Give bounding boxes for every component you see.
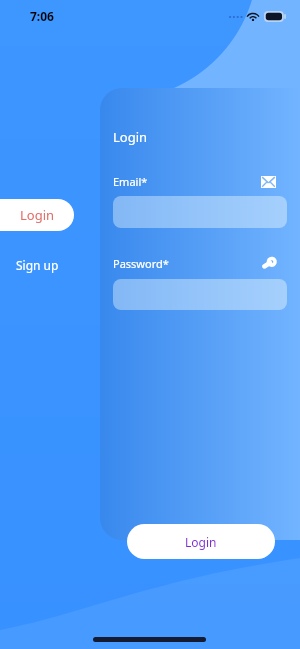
button[interactable]: Login (0, 199, 74, 231)
button[interactable] (113, 196, 287, 228)
other: Email (261, 176, 276, 188)
button[interactable]: Sign up (0, 254, 74, 276)
staticText: Login (185, 534, 217, 550)
staticText: Sign up (16, 257, 59, 273)
button[interactable]: Login (127, 524, 275, 559)
other: Password (261, 256, 277, 271)
staticText: Email* (113, 174, 148, 189)
staticText: 7:06 (30, 8, 54, 24)
staticText: Login (20, 206, 55, 224)
staticText: Login (113, 128, 148, 146)
button[interactable] (113, 279, 287, 310)
staticText: Password* (113, 256, 169, 271)
